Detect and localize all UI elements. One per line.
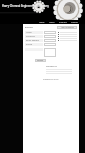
button[interactable] (58, 38, 77, 39)
staticText: Harry Chennai Engineering Company (2, 4, 49, 8)
button[interactable]: Home (38, 21, 46, 24)
staticText: Company (26, 35, 35, 38)
staticText: Enquiry (25, 26, 33, 29)
staticText: Contact Us (46, 65, 57, 68)
staticText: Contact (71, 21, 78, 24)
button[interactable]: Harry Chennai Engineering Company (2, 4, 49, 8)
button[interactable]: Your Enquiries (57, 26, 77, 29)
button[interactable]: Phone (25, 43, 56, 46)
button[interactable]: Submit (35, 59, 46, 62)
button[interactable]: Contact (70, 21, 79, 24)
button[interactable]: Email address (25, 39, 56, 42)
button[interactable]: Company (25, 35, 56, 38)
staticText: Powered by HCEC (43, 78, 59, 81)
button[interactable]: Products (58, 21, 68, 24)
button[interactable]: Name (25, 31, 56, 34)
staticText: Your Enquiries (61, 26, 74, 29)
button[interactable]: About (48, 21, 56, 24)
staticText: Name (26, 31, 32, 34)
staticText: About (49, 21, 55, 24)
button[interactable] (58, 32, 77, 33)
button[interactable] (58, 36, 77, 37)
staticText: Submit (37, 59, 44, 62)
button[interactable] (58, 34, 77, 35)
staticText: Products (59, 21, 67, 24)
staticText: Phone (26, 43, 33, 46)
staticText: Email address (26, 39, 40, 42)
staticText: Home (39, 21, 45, 24)
button[interactable] (44, 48, 56, 57)
button[interactable] (58, 40, 77, 41)
